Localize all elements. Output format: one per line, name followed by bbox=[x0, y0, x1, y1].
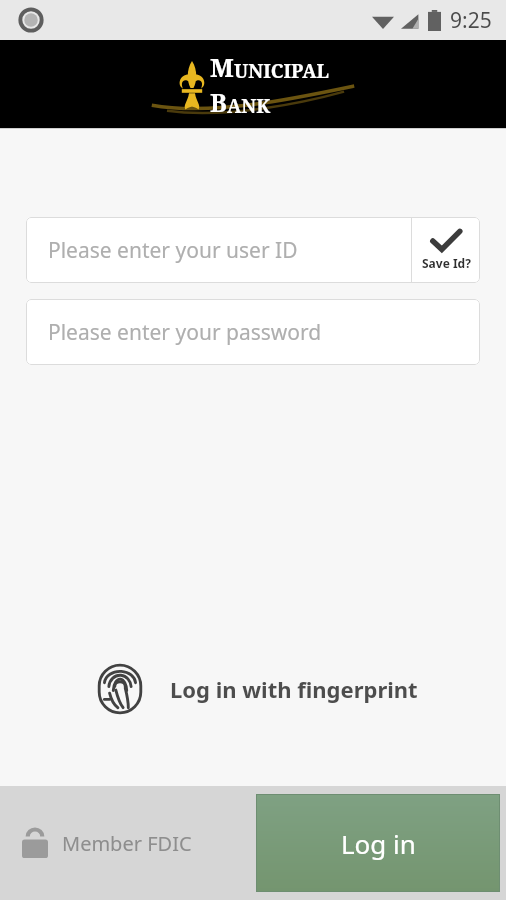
staticText: UNICIPAL bbox=[234, 58, 330, 84]
staticText: B bbox=[210, 85, 227, 119]
staticText: M bbox=[210, 50, 234, 84]
button[interactable]: Please enter your user ID bbox=[26, 217, 411, 283]
button[interactable]: Log in with fingerprint bbox=[0, 655, 506, 723]
button[interactable]: Please enter your password bbox=[26, 299, 480, 365]
button[interactable]: Save Id bbox=[412, 217, 480, 283]
button[interactable]: Log in bbox=[256, 794, 500, 892]
staticText: 9:25 bbox=[450, 6, 492, 35]
staticText: Member FDIC bbox=[62, 830, 192, 857]
staticText: Log in bbox=[341, 826, 416, 861]
staticText: Log in with fingerprint bbox=[170, 674, 418, 704]
staticText: ANK bbox=[227, 93, 271, 119]
button[interactable]: Member FDIC bbox=[0, 820, 204, 866]
staticText: Save Id? bbox=[422, 255, 471, 271]
staticText: Please enter your password bbox=[48, 318, 322, 347]
staticText: Please enter your user ID bbox=[48, 236, 298, 265]
